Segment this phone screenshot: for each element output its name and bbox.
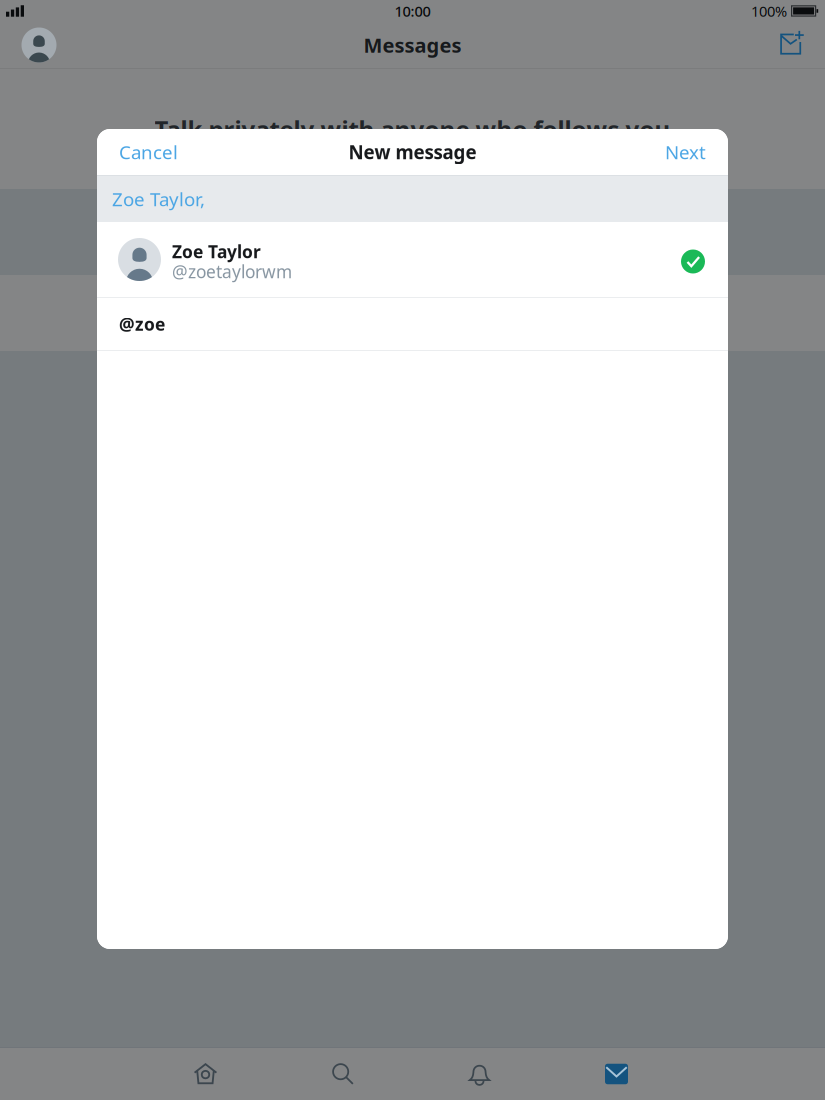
staticText: Cancel [119, 140, 178, 164]
button[interactable]: Account [16, 23, 62, 67]
button[interactable]: Search [274, 1048, 411, 1100]
button[interactable]: Messages [548, 1048, 685, 1100]
button[interactable]: Home [137, 1048, 274, 1100]
staticText: Messages [363, 32, 461, 58]
button[interactable]: Cancel [97, 129, 200, 175]
staticText: 10:00 [394, 1, 430, 21]
staticText: Zoe Taylor [172, 240, 261, 263]
staticText: Next [665, 140, 706, 164]
staticText: New message [348, 140, 476, 164]
button[interactable]: Zoe Taylor [97, 222, 728, 297]
staticText: @zoetaylorwm [172, 260, 292, 283]
button[interactable]: Next [643, 129, 728, 175]
staticText: Talk privately with anyone who follows y… [154, 113, 670, 145]
staticText: 100% [751, 1, 787, 21]
button[interactable]: New message [769, 23, 815, 67]
staticText: @zoe [119, 312, 165, 335]
staticText: Zoe Taylor, [112, 187, 205, 211]
button[interactable]: @zoe [97, 298, 728, 350]
button[interactable]: Notifications [411, 1048, 548, 1100]
